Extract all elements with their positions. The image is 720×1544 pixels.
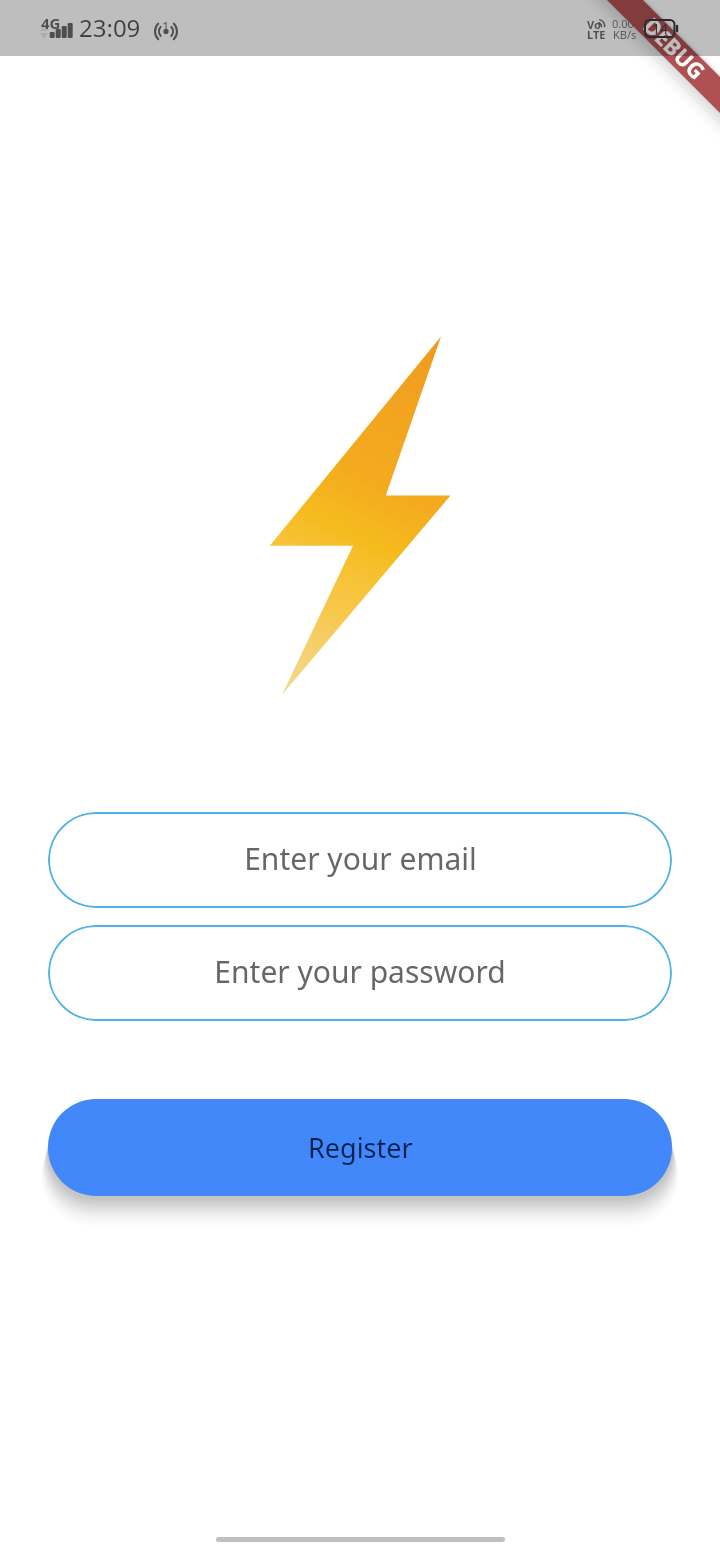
staticText: 4G xyxy=(41,13,61,33)
staticText: DEBUG xyxy=(637,10,712,85)
other: Battery 14 percent xyxy=(644,19,680,38)
other: App logo, lightning bolt xyxy=(270,336,451,695)
button[interactable]: Register xyxy=(48,1099,672,1196)
staticText: KB/s xyxy=(613,27,637,42)
button[interactable]: Enter your password xyxy=(48,925,672,1021)
staticText: Register xyxy=(308,1129,413,1166)
staticText: LTE xyxy=(587,27,606,42)
other: Mobile signal 4G xyxy=(38,12,78,40)
staticText: 1 xyxy=(162,17,170,35)
staticText: 14 xyxy=(652,19,669,38)
staticText: Enter your email xyxy=(244,838,477,879)
staticText: 23:09 xyxy=(79,11,141,44)
other: Hotspot, 1 device xyxy=(155,17,177,37)
staticText: Enter your password xyxy=(214,951,506,992)
staticText: Vo xyxy=(587,17,601,32)
staticText: 0.00 xyxy=(612,16,634,31)
button[interactable]: Enter your email xyxy=(48,812,672,908)
